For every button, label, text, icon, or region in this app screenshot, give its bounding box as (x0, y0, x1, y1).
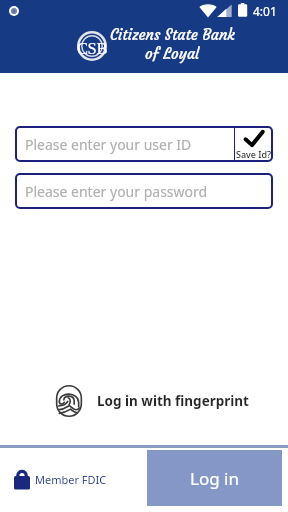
staticText: of Loyal (145, 44, 200, 63)
button[interactable]: Please enter your password (15, 173, 273, 209)
button[interactable]: Member FDIC (0, 443, 288, 483)
other: Notification (9, 6, 19, 16)
staticText: Log in (190, 467, 239, 490)
staticText: Please enter your user ID (25, 135, 192, 154)
staticText: 4:01 (253, 3, 277, 19)
button[interactable]: Log in with fingerprint (0, 377, 288, 425)
staticText: Member FDIC (35, 472, 107, 487)
staticText: Log in with fingerprint (97, 392, 249, 410)
button[interactable]: Save Id (235, 126, 273, 162)
staticText: Save Id? (236, 148, 272, 160)
button[interactable]: Please enter your user ID (15, 126, 234, 162)
staticText: Citizens State Bank (110, 25, 235, 44)
button[interactable]: Log in (147, 450, 282, 506)
staticText: Please enter your password (25, 182, 208, 201)
staticText: CSB (77, 39, 107, 57)
